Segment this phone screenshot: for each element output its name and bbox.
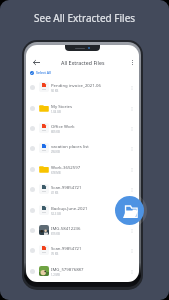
- button[interactable]: vacation places list: [26, 138, 139, 158]
- button[interactable]: Open folder: [115, 196, 144, 225]
- button[interactable]: IMG-58412236: [26, 220, 139, 240]
- button[interactable]: Row options: [126, 82, 137, 93]
- staticText: Work-3652597: [51, 164, 81, 170]
- button[interactable]: Row options: [126, 266, 137, 277]
- staticText: 294 KB: [51, 150, 60, 154]
- button[interactable]: Row options: [126, 245, 137, 256]
- button[interactable]: Row options: [126, 143, 137, 154]
- staticText: My Stories: [51, 103, 73, 109]
- staticText: 76 KB: [51, 252, 59, 256]
- button[interactable]: Pending invoice_2021-06: [26, 77, 139, 97]
- button[interactable]: Scan-99854721: [26, 179, 139, 199]
- button[interactable]: Row options: [126, 205, 137, 216]
- staticText: All Extracted Files: [61, 59, 105, 66]
- staticText: 52.3 GB: [51, 212, 61, 216]
- button[interactable]: Row options: [126, 164, 137, 175]
- button[interactable]: My Stories: [26, 98, 139, 118]
- staticText: IMG-58412236: [51, 225, 81, 231]
- staticText: 1.04 GB: [51, 110, 61, 114]
- button[interactable]: Select All: [29, 68, 53, 77]
- button[interactable]: Backup-June-2021: [26, 200, 139, 220]
- staticText: Backup-June-2021: [51, 205, 88, 211]
- staticText: vacation places list: [51, 143, 89, 149]
- button[interactable]: Work-3652597: [26, 159, 139, 179]
- button[interactable]: Row options: [126, 184, 137, 195]
- button[interactable]: Scan-99854721: [26, 240, 139, 260]
- button[interactable]: Row options: [126, 103, 137, 114]
- staticText: 805 KB: [51, 130, 60, 134]
- staticText: Scan-99854721: [51, 184, 82, 190]
- staticText: 41 KB: [51, 191, 59, 195]
- button[interactable]: Back: [30, 56, 43, 69]
- button[interactable]: More options: [126, 56, 139, 69]
- staticText: See All Extracted Files: [34, 11, 136, 25]
- staticText: 678 MB: [51, 171, 61, 175]
- staticText: 815 KB: [51, 232, 60, 236]
- staticText: Pending invoice_2021-06: [51, 82, 102, 88]
- staticText: IMG_579876887: [51, 266, 84, 272]
- button[interactable]: IMG_579876887: [26, 261, 139, 281]
- staticText: Scan-99854721: [51, 245, 82, 251]
- staticText: 50 KB: [51, 89, 59, 93]
- staticText: Office Work: [51, 123, 75, 129]
- button[interactable]: Row options: [126, 225, 137, 236]
- staticText: Select All: [36, 70, 52, 75]
- button[interactable]: Office Work: [26, 118, 139, 138]
- staticText: 1.2 MB: [51, 273, 60, 277]
- button[interactable]: Row options: [126, 123, 137, 134]
